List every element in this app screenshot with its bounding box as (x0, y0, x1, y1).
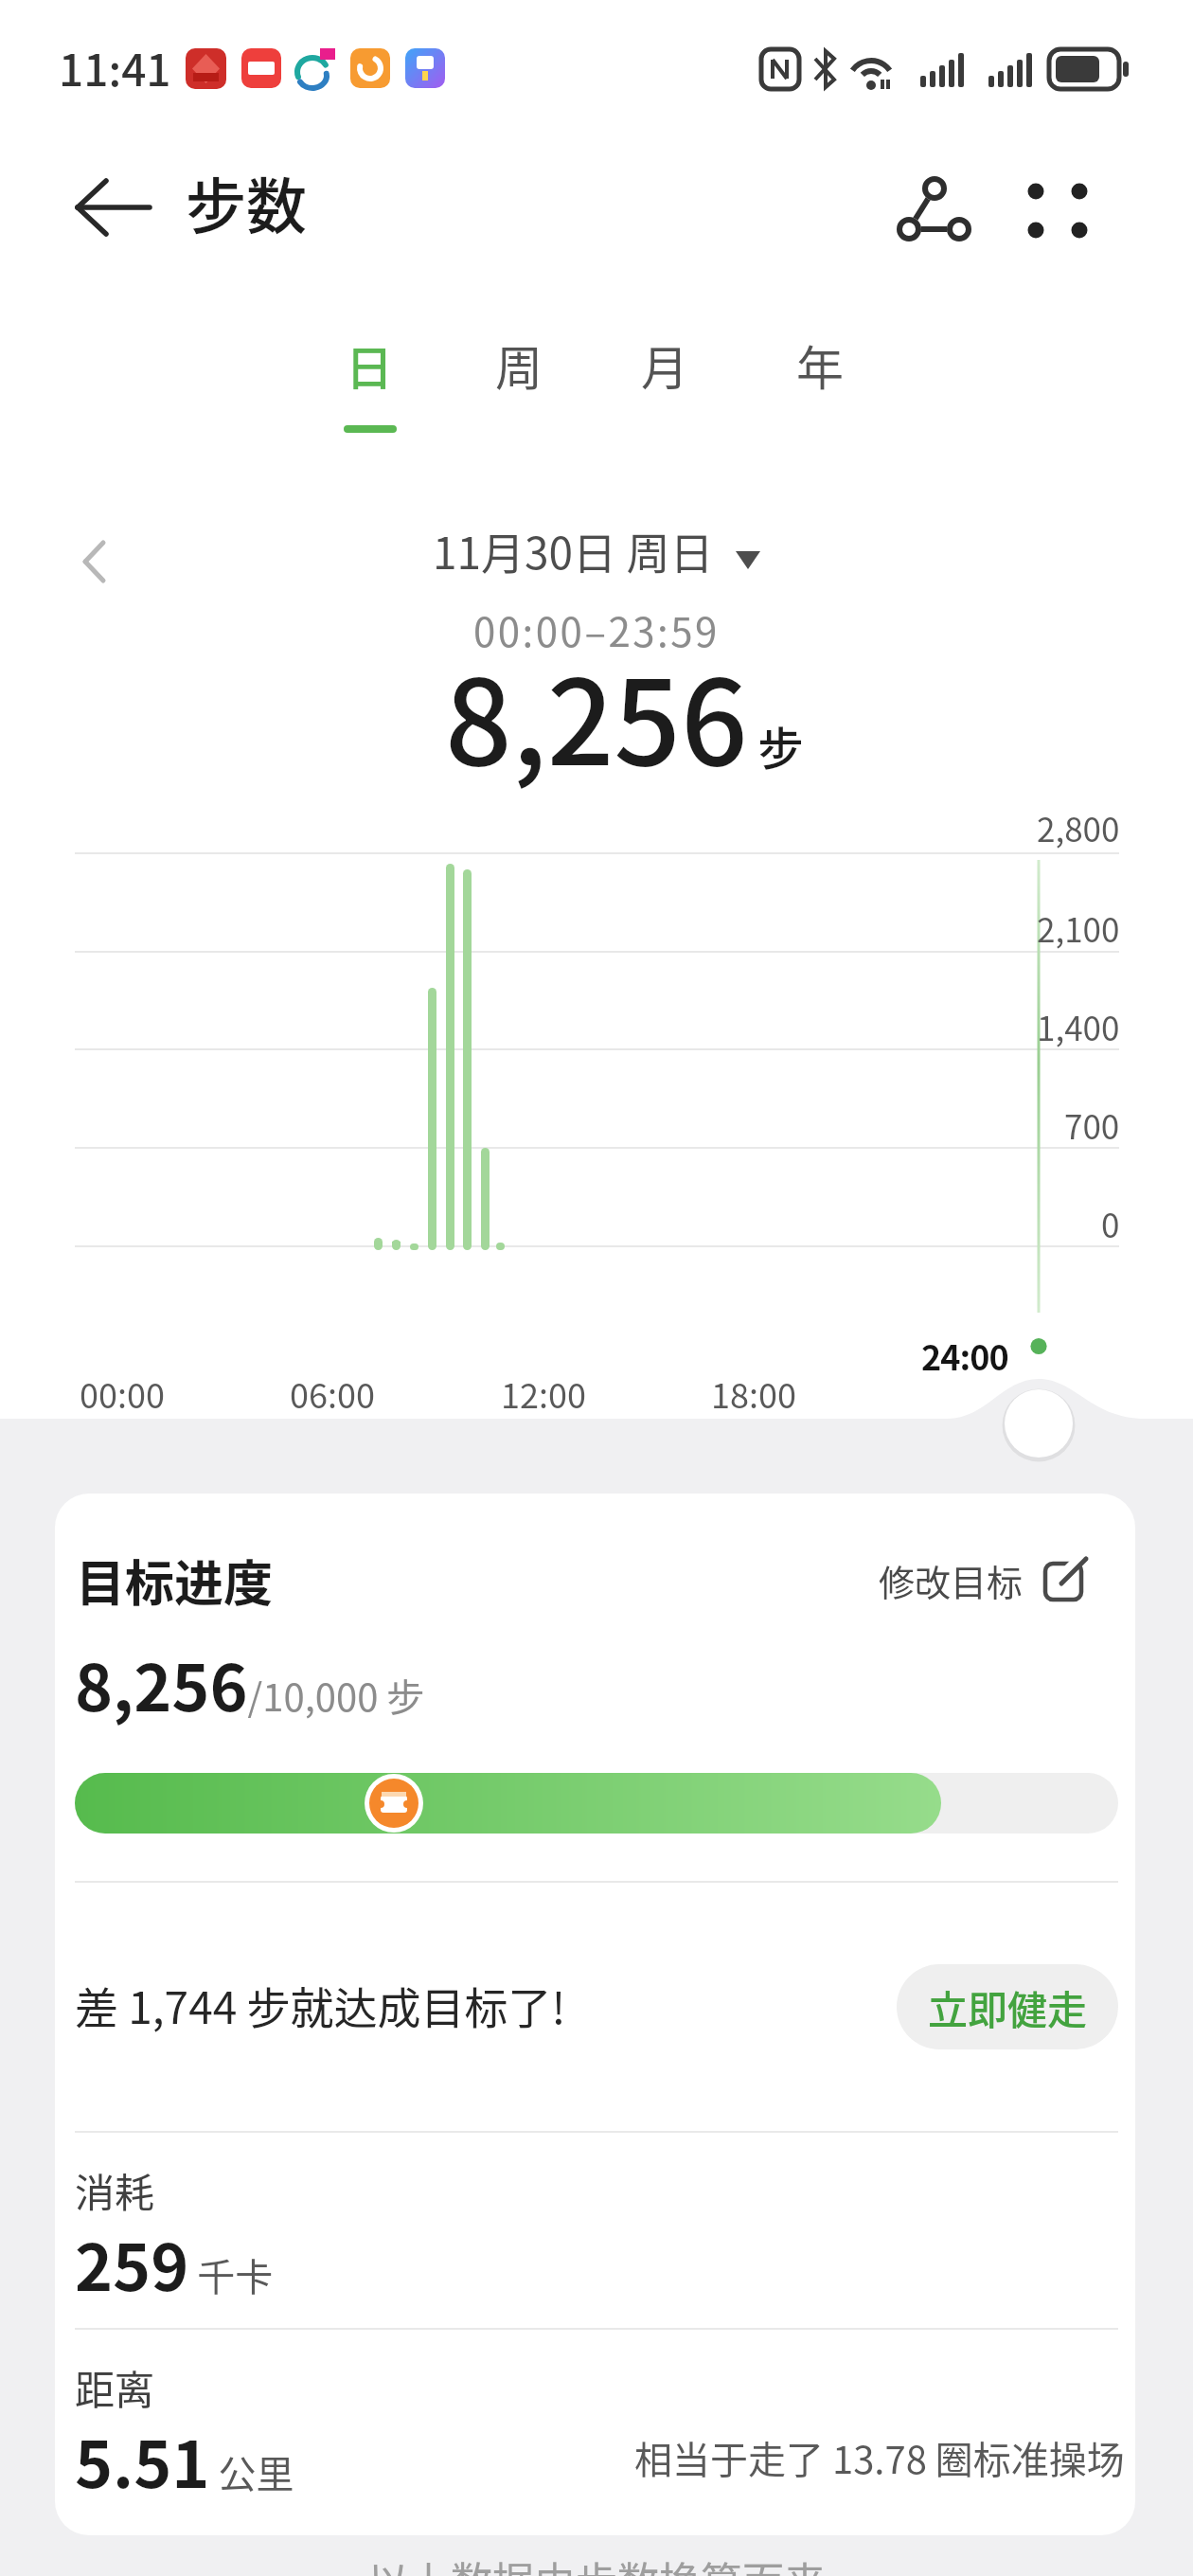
staticText: 18:00 (711, 1368, 796, 1418)
staticText: 距离 (75, 2358, 155, 2416)
staticText: 2,800 (1037, 803, 1120, 851)
staticText: 差 1,744 步就达成目标了! (75, 1974, 566, 2037)
staticText: 步数 (186, 158, 307, 246)
staticText: 以上数据由步数换算而来 (367, 2549, 826, 2576)
staticText: 日 (346, 331, 393, 399)
staticText: 月 (641, 331, 688, 399)
staticText: 5.51 公里 (75, 2413, 294, 2506)
staticText: 00:00 (80, 1368, 165, 1418)
staticText: 目标进度 (76, 1545, 274, 1616)
staticText: 立即健走 (928, 1978, 1088, 2036)
staticText: 年 (796, 331, 844, 399)
button[interactable] (1043, 1554, 1091, 1601)
staticText: 0 (1101, 1199, 1120, 1247)
staticText: 12:00 (501, 1368, 586, 1418)
staticText: 06:00 (290, 1368, 375, 1418)
staticText: 8,256 步 (445, 629, 804, 799)
staticText: 24:00 (921, 1331, 1008, 1380)
staticText: 周 (495, 331, 543, 399)
button[interactable] (80, 540, 107, 583)
button[interactable] (888, 175, 973, 243)
button[interactable] (75, 178, 154, 237)
staticText: 259 千卡 (75, 2216, 274, 2309)
staticText: 2,100 (1037, 903, 1120, 952)
staticText: 8,256/10,000 步 (75, 1637, 425, 1729)
staticText: 11月30日 周日 (433, 519, 714, 582)
staticText: 相当于走了 13.78 圈标准操场 (634, 2430, 1125, 2485)
staticText: 700 (1064, 1100, 1120, 1149)
button[interactable] (1027, 183, 1090, 240)
staticText: 00:00–23:59 (473, 600, 720, 658)
staticText: 1,400 (1037, 1002, 1120, 1050)
staticText: 11:41 (59, 36, 171, 99)
staticText: 消耗 (75, 2161, 155, 2219)
button[interactable]: 立即健走 (897, 1964, 1118, 2049)
button[interactable] (344, 425, 397, 433)
